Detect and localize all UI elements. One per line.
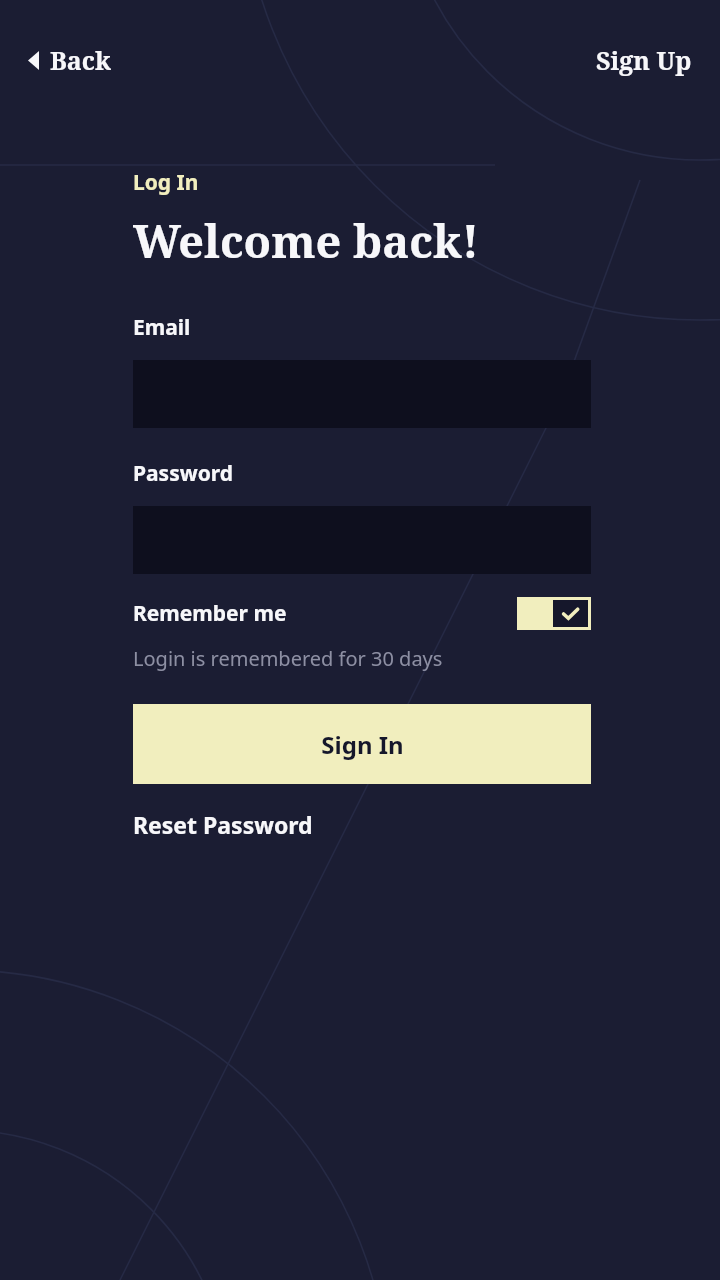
button[interactable]: Sign In	[133, 704, 591, 784]
staticText: Sign In	[321, 728, 404, 761]
button[interactable]: Sign Up	[582, 33, 706, 87]
button[interactable]: Reset Password	[133, 809, 313, 840]
button[interactable]: Remember me toggle, on	[517, 597, 591, 630]
staticText: Log In	[133, 168, 199, 197]
staticText: Reset Password	[133, 809, 313, 840]
staticText: Remember me	[133, 599, 287, 628]
staticText: Password	[133, 459, 234, 488]
staticText: Back	[50, 43, 111, 77]
staticText: Login is remembered for 30 days	[133, 645, 443, 672]
staticText: Sign Up	[596, 43, 692, 77]
staticText: Welcome back!	[133, 210, 479, 271]
staticText: Email	[133, 313, 191, 342]
button[interactable]: Back	[14, 33, 125, 87]
